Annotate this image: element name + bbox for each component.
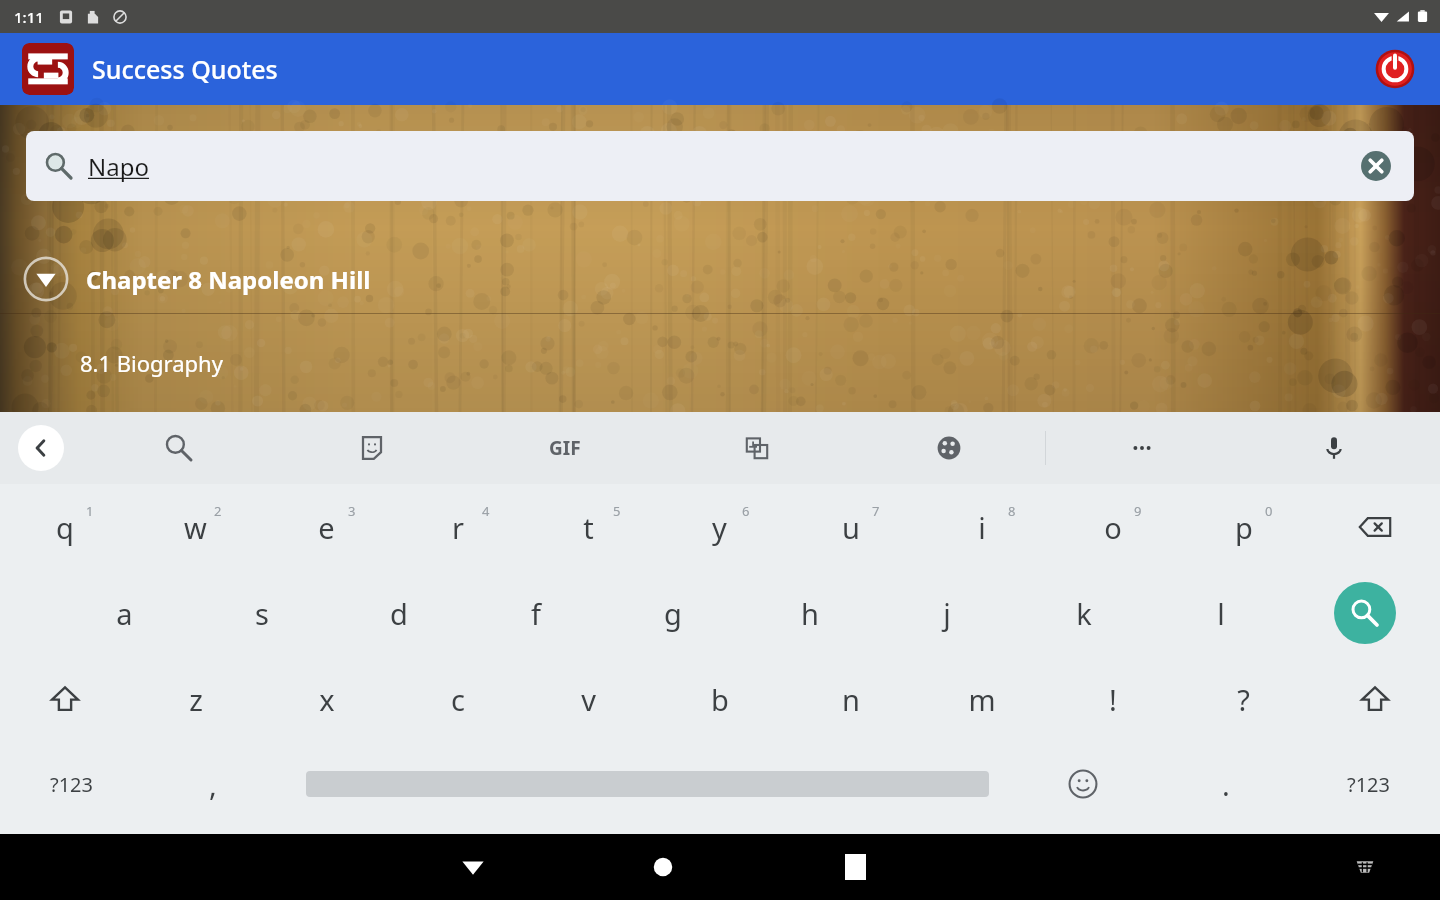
button[interactable]: x [261,656,392,742]
button[interactable]: Recent apps [822,834,888,900]
staticText: m [968,680,996,719]
button[interactable]: Clear search [1356,146,1396,186]
staticText: 4 [482,502,490,520]
staticText: q [56,508,74,547]
button[interactable]: ?123 [1297,742,1440,826]
button[interactable]: Themes [853,412,1045,484]
button[interactable]: . [1154,742,1297,826]
button[interactable]: Translate [661,412,853,484]
staticText: 6 [742,502,750,520]
button[interactable]: ?123 [0,742,142,826]
button[interactable]: k [1015,570,1152,656]
button[interactable]: , [142,742,284,826]
button[interactable]: c [392,656,523,742]
button[interactable]: s [193,570,330,656]
button[interactable]: ? [1178,656,1309,742]
staticText: ?123 [1347,771,1390,798]
staticText: ?123 [50,771,93,798]
staticText: ? [1237,680,1250,719]
button[interactable]: Napo [26,131,1414,201]
button[interactable]: i [916,484,1047,570]
button[interactable]: GIF [468,412,661,484]
button[interactable]: o [1047,484,1178,570]
button[interactable]: m [916,656,1047,742]
staticText: Chapter 8 Napoleon Hill [86,263,371,296]
staticText: 7 [872,502,880,520]
staticText: j [943,594,951,633]
staticText: l [1217,594,1225,633]
button[interactable]: d [330,570,467,656]
button[interactable]: Collapse chapter [0,251,1440,307]
staticText: n [842,680,860,719]
staticText: y [712,508,727,547]
button[interactable]: y [654,484,785,570]
staticText: 5 [613,502,621,520]
button[interactable]: Exit [1372,46,1418,92]
staticText: ! [1109,680,1117,719]
button[interactable]: Back [0,412,82,484]
button[interactable]: e [261,484,392,570]
staticText: 2 [214,502,222,520]
staticText: p [1235,508,1253,547]
button[interactable]: n [785,656,916,742]
staticText: , [209,765,217,804]
staticText: Napo [88,150,149,183]
staticText: g [664,594,682,633]
staticText: e [318,508,335,547]
staticText: s [255,594,269,633]
button[interactable]: w [130,484,261,570]
button[interactable]: Shift [1309,656,1440,742]
button[interactable]: l [1152,570,1289,656]
button[interactable]: Stickers [275,412,468,484]
button[interactable]: u [785,484,916,570]
staticText: 1 [86,502,94,520]
button[interactable]: Backspace [1309,484,1440,570]
button[interactable]: Hide keyboard [440,834,506,900]
button[interactable]: Switch keyboard [1332,834,1398,900]
staticText: 9 [1134,502,1142,520]
button[interactable]: r [392,484,523,570]
staticText: t [583,508,594,547]
button[interactable]: App icon [22,43,74,95]
button[interactable]: More options [1046,412,1238,484]
staticText: 1:11 [14,7,44,27]
button[interactable]: a [56,570,193,656]
staticText: u [842,508,860,547]
staticText: a [116,594,133,633]
button[interactable]: h [741,570,878,656]
staticText: h [801,594,819,633]
button[interactable]: j [878,570,1015,656]
button[interactable]: 8.1 Biography [0,346,1440,388]
staticText: r [452,508,464,547]
staticText: k [1076,594,1092,633]
button[interactable]: b [654,656,785,742]
button[interactable]: g [604,570,741,656]
button[interactable]: Voice input [1238,412,1430,484]
staticText: d [390,594,408,633]
staticText: 8 [1008,502,1016,520]
staticText: GIF [549,435,581,461]
button[interactable]: Space [284,742,1011,826]
other: Collapse chapter [22,255,70,303]
button[interactable]: ! [1047,656,1178,742]
button[interactable]: z [130,656,261,742]
button[interactable]: Home [630,834,696,900]
button[interactable]: Emoji [1011,742,1154,826]
button[interactable]: q [0,484,130,570]
button[interactable]: Search [82,412,275,484]
button[interactable]: t [523,484,654,570]
button[interactable]: Search [1289,570,1440,656]
staticText: Success Quotes [92,52,278,86]
staticText: 0 [1265,502,1273,520]
staticText: f [531,594,541,633]
button[interactable]: p [1178,484,1309,570]
staticText: v [581,680,596,719]
staticText: w [184,508,207,547]
staticText: z [189,680,203,719]
staticText: c [451,680,465,719]
staticText: 3 [348,502,356,520]
staticText: x [319,680,335,719]
button[interactable]: v [523,656,654,742]
button[interactable]: Shift [0,656,130,742]
button[interactable]: f [467,570,604,656]
